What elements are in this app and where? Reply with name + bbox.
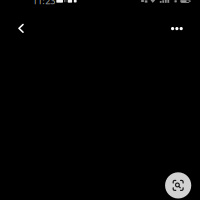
button[interactable]: More options <box>166 19 188 39</box>
staticText: 11:23 <box>32 0 55 7</box>
button[interactable]: Back <box>11 18 31 38</box>
button[interactable]: Visual Look Up <box>165 172 191 198</box>
